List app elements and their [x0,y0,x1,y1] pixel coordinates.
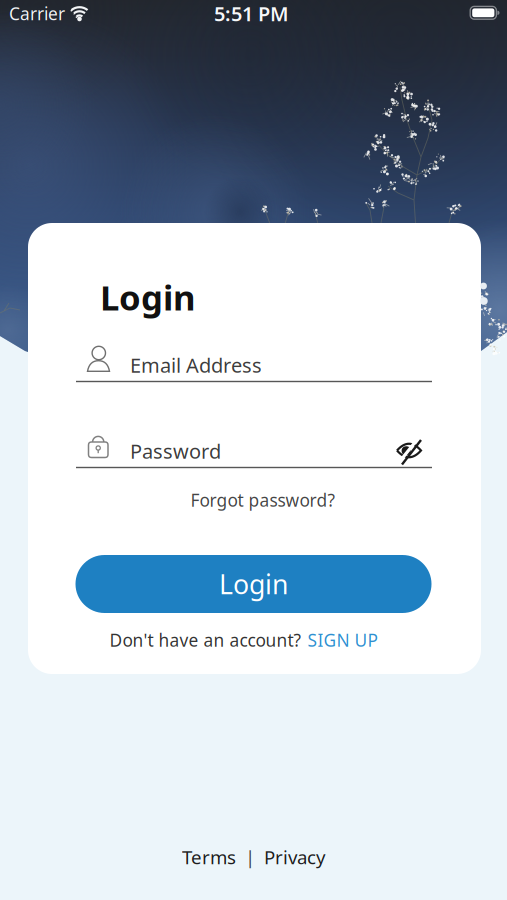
staticText: Email Address [130,352,262,378]
staticText: Don't have an account? [109,628,301,651]
staticText: SIGN UP [307,628,377,651]
staticText: | [245,845,255,869]
button[interactable]: Forgot password? [190,484,335,515]
staticText: Forgot password? [190,488,335,511]
staticText: Privacy [264,845,326,869]
staticText: 5:51 PM [214,0,289,27]
button[interactable]: Privacy [264,845,326,869]
staticText: Carrier [9,2,65,25]
button[interactable]: Email Address [76,343,432,387]
staticText: Login [100,274,196,320]
staticText: Login [219,566,288,602]
staticText: Terms [182,845,236,869]
button[interactable]: Login [75,555,431,613]
staticText: Password [130,438,221,464]
button[interactable]: Password [76,429,432,473]
button[interactable]: Terms [182,845,236,869]
button[interactable]: SIGN UP [307,628,377,651]
button[interactable]: Show password [392,435,426,465]
